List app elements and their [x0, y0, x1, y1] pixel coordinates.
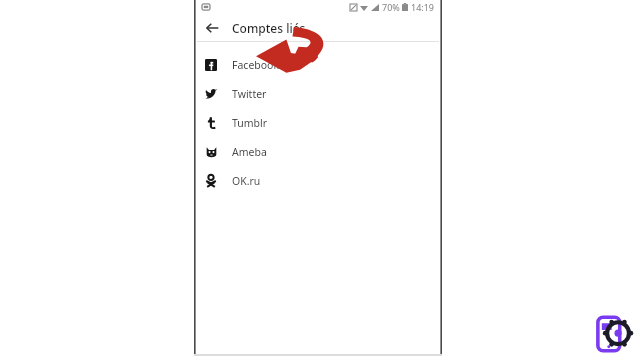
- button[interactable]: Tumblr: [194, 108, 442, 137]
- staticText: Comptes liés: [232, 20, 306, 36]
- staticText: Ameba: [232, 145, 267, 159]
- staticText: OK.ru: [232, 174, 261, 188]
- staticText: 14:19: [411, 1, 435, 13]
- button[interactable]: Back: [199, 15, 225, 41]
- button[interactable]: Facebook: [194, 50, 442, 79]
- button[interactable]: OK.ru: [194, 166, 442, 195]
- staticText: 70%: [382, 1, 400, 13]
- staticText: Tumblr: [232, 116, 268, 130]
- staticText: Facebook: [232, 58, 280, 72]
- button[interactable]: Ameba: [194, 137, 442, 166]
- button[interactable]: App logo: [592, 313, 634, 355]
- staticText: Twitter: [232, 87, 267, 101]
- button[interactable]: Twitter: [194, 79, 442, 108]
